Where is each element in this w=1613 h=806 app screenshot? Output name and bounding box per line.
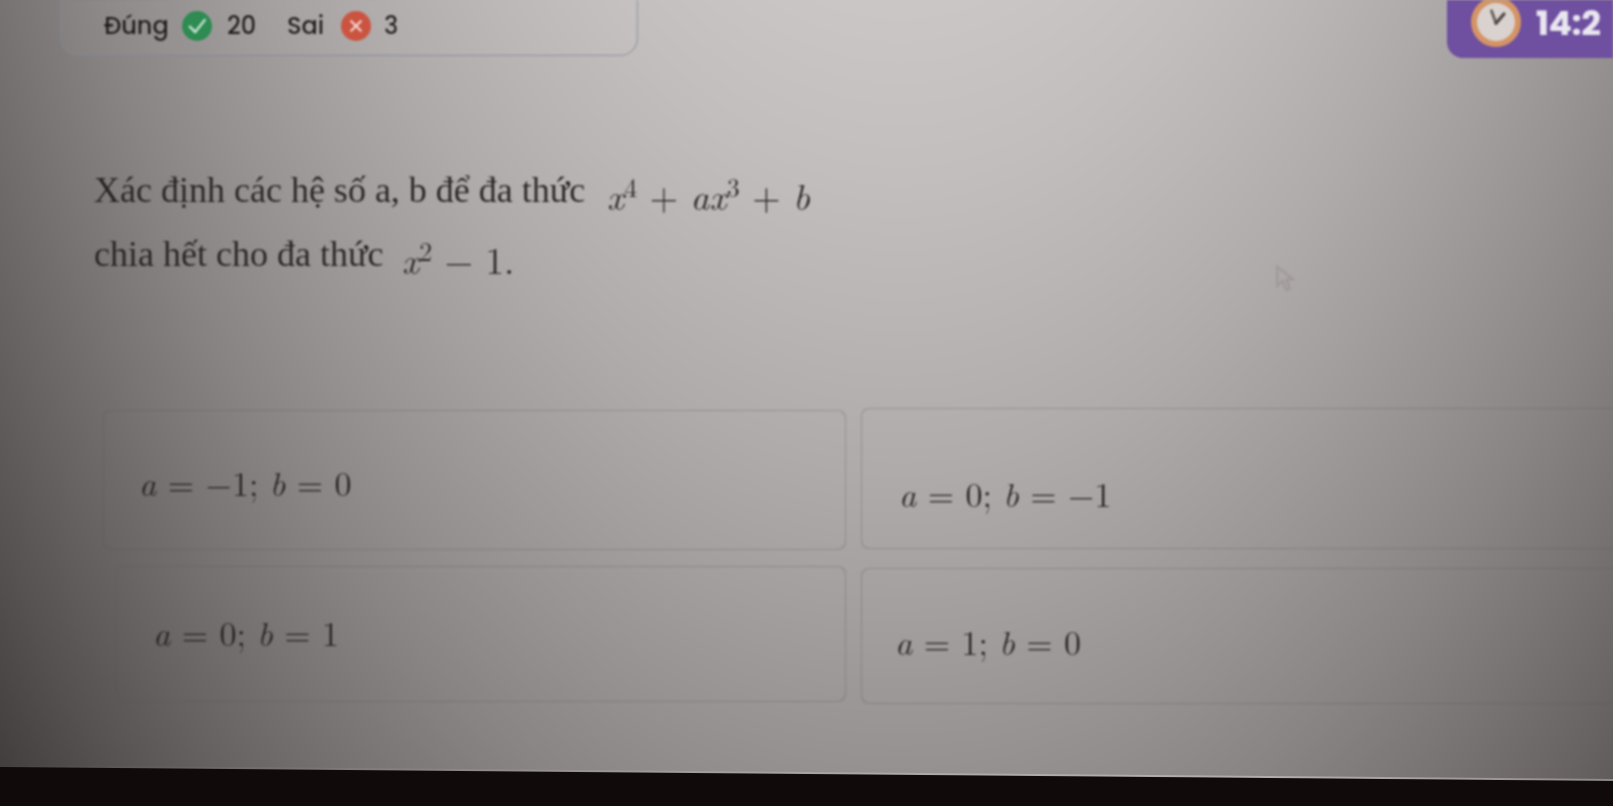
button[interactable]: Đúng <box>104 9 399 43</box>
button[interactable]: Remaining time 14:2 <box>1447 0 1613 58</box>
button[interactable] <box>861 408 1613 549</box>
button[interactable] <box>861 568 1613 704</box>
button[interactable] <box>116 566 846 702</box>
staticText: x2 − 1. <box>402 232 515 284</box>
staticText: x4 + ax3 + b <box>607 168 811 220</box>
other: Wrong answers <box>341 11 371 41</box>
staticText: a = 1; b = 0 <box>895 617 1081 665</box>
staticText: a = 0; b = 1 <box>153 608 339 656</box>
staticText: 20 <box>227 9 257 43</box>
staticText: a = 0; b = −1 <box>899 469 1112 517</box>
staticText: 3 <box>384 9 399 43</box>
staticText: chia hết cho đa thức <box>94 234 384 274</box>
staticText: 14:2 <box>1536 0 1601 47</box>
other: Correct answers <box>182 11 212 41</box>
staticText: Xác định các hệ số a, b để đa thức <box>94 170 586 210</box>
staticText: Sai <box>287 9 325 43</box>
button[interactable] <box>103 410 846 550</box>
staticText: Đúng <box>104 9 169 43</box>
staticText: a = −1; b = 0 <box>139 458 352 506</box>
button[interactable] <box>60 0 638 56</box>
